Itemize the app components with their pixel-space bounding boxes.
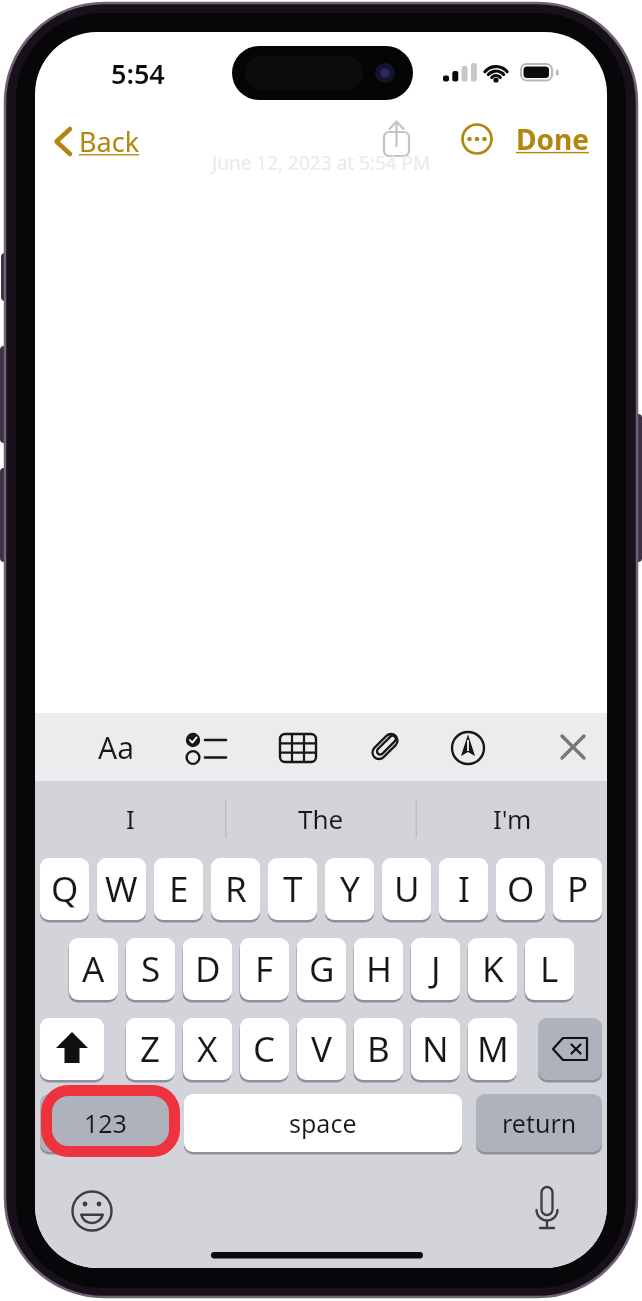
button[interactable]: Y [325, 858, 374, 920]
staticText: N [422, 1025, 449, 1073]
button[interactable]: T [268, 858, 317, 920]
staticText: June 12, 2023 at 5:54 PM [212, 150, 431, 176]
button[interactable] [525, 1190, 569, 1234]
button[interactable]: G [297, 938, 346, 1000]
button[interactable]: L [525, 938, 574, 1000]
staticText: F [255, 945, 274, 993]
staticText: Y [340, 865, 360, 913]
staticText: L [540, 945, 559, 993]
staticText: I [126, 801, 135, 836]
staticText: A [82, 945, 105, 993]
button[interactable]: C [240, 1018, 289, 1080]
staticText: B [367, 1025, 390, 1073]
button[interactable]: space [184, 1094, 462, 1152]
staticText: Z [140, 1025, 161, 1073]
staticText: Aa [98, 727, 134, 768]
staticText: X [197, 1025, 218, 1073]
staticText: return [502, 1106, 577, 1140]
button[interactable] [375, 120, 419, 164]
staticText: I'm [493, 801, 532, 836]
button[interactable] [40, 1018, 104, 1080]
button[interactable]: 5:54 [35, 51, 258, 95]
button[interactable]: W [97, 858, 146, 920]
staticText: J [431, 945, 441, 993]
button[interactable]: V [297, 1018, 346, 1080]
button[interactable]: X [183, 1018, 232, 1080]
button[interactable]: 123 [40, 1094, 170, 1152]
staticText: U [394, 865, 420, 913]
button[interactable]: R [211, 858, 260, 920]
staticText: K [482, 945, 504, 993]
staticText: Q [51, 865, 79, 913]
button[interactable]: A [69, 938, 118, 1000]
button[interactable]: M [468, 1018, 517, 1080]
button[interactable]: P [553, 858, 602, 920]
button[interactable]: The [231, 796, 411, 840]
button[interactable]: Done [432, 117, 607, 161]
staticText: I [458, 865, 470, 913]
staticText: O [507, 865, 535, 913]
button[interactable] [538, 1018, 602, 1080]
staticText: M [477, 1025, 509, 1073]
button[interactable]: U [382, 858, 431, 920]
staticText: P [567, 865, 589, 913]
button[interactable]: Back [35, 119, 229, 163]
staticText: D [195, 945, 221, 993]
staticText: Back [79, 123, 140, 160]
staticText: C [253, 1025, 276, 1073]
staticText: 123 [84, 1106, 127, 1140]
staticText: The [298, 801, 344, 836]
button[interactable]: O [496, 858, 545, 920]
staticText: T [283, 865, 303, 913]
button[interactable]: I [439, 858, 488, 920]
button[interactable]: B [354, 1018, 403, 1080]
staticText: space [289, 1106, 357, 1140]
staticText: 5:54 [111, 55, 165, 92]
staticText: V [311, 1025, 333, 1073]
button[interactable]: D [183, 938, 232, 1000]
button[interactable]: K [468, 938, 517, 1000]
button[interactable]: Q [40, 858, 89, 920]
staticText: Done [516, 120, 589, 158]
button[interactable]: F [240, 938, 289, 1000]
button[interactable]: June 12, 2023 at 5:54 PM [161, 141, 481, 185]
button[interactable]: S [126, 938, 175, 1000]
button[interactable]: J [411, 938, 460, 1000]
staticText: S [141, 945, 161, 993]
staticText: E [169, 865, 189, 913]
button[interactable]: H [354, 938, 403, 1000]
button[interactable]: I'm [422, 796, 602, 840]
button[interactable]: N [411, 1018, 460, 1080]
button[interactable]: return [476, 1094, 602, 1152]
button[interactable]: I [40, 796, 220, 840]
staticText: R [225, 865, 247, 913]
staticText: H [366, 945, 392, 993]
button[interactable]: Aa [81, 725, 151, 769]
button[interactable] [455, 117, 499, 161]
staticText: G [309, 945, 335, 993]
staticText: W [105, 865, 138, 913]
button[interactable]: Z [126, 1018, 175, 1080]
button[interactable] [72, 1190, 116, 1234]
button[interactable]: E [154, 858, 203, 920]
